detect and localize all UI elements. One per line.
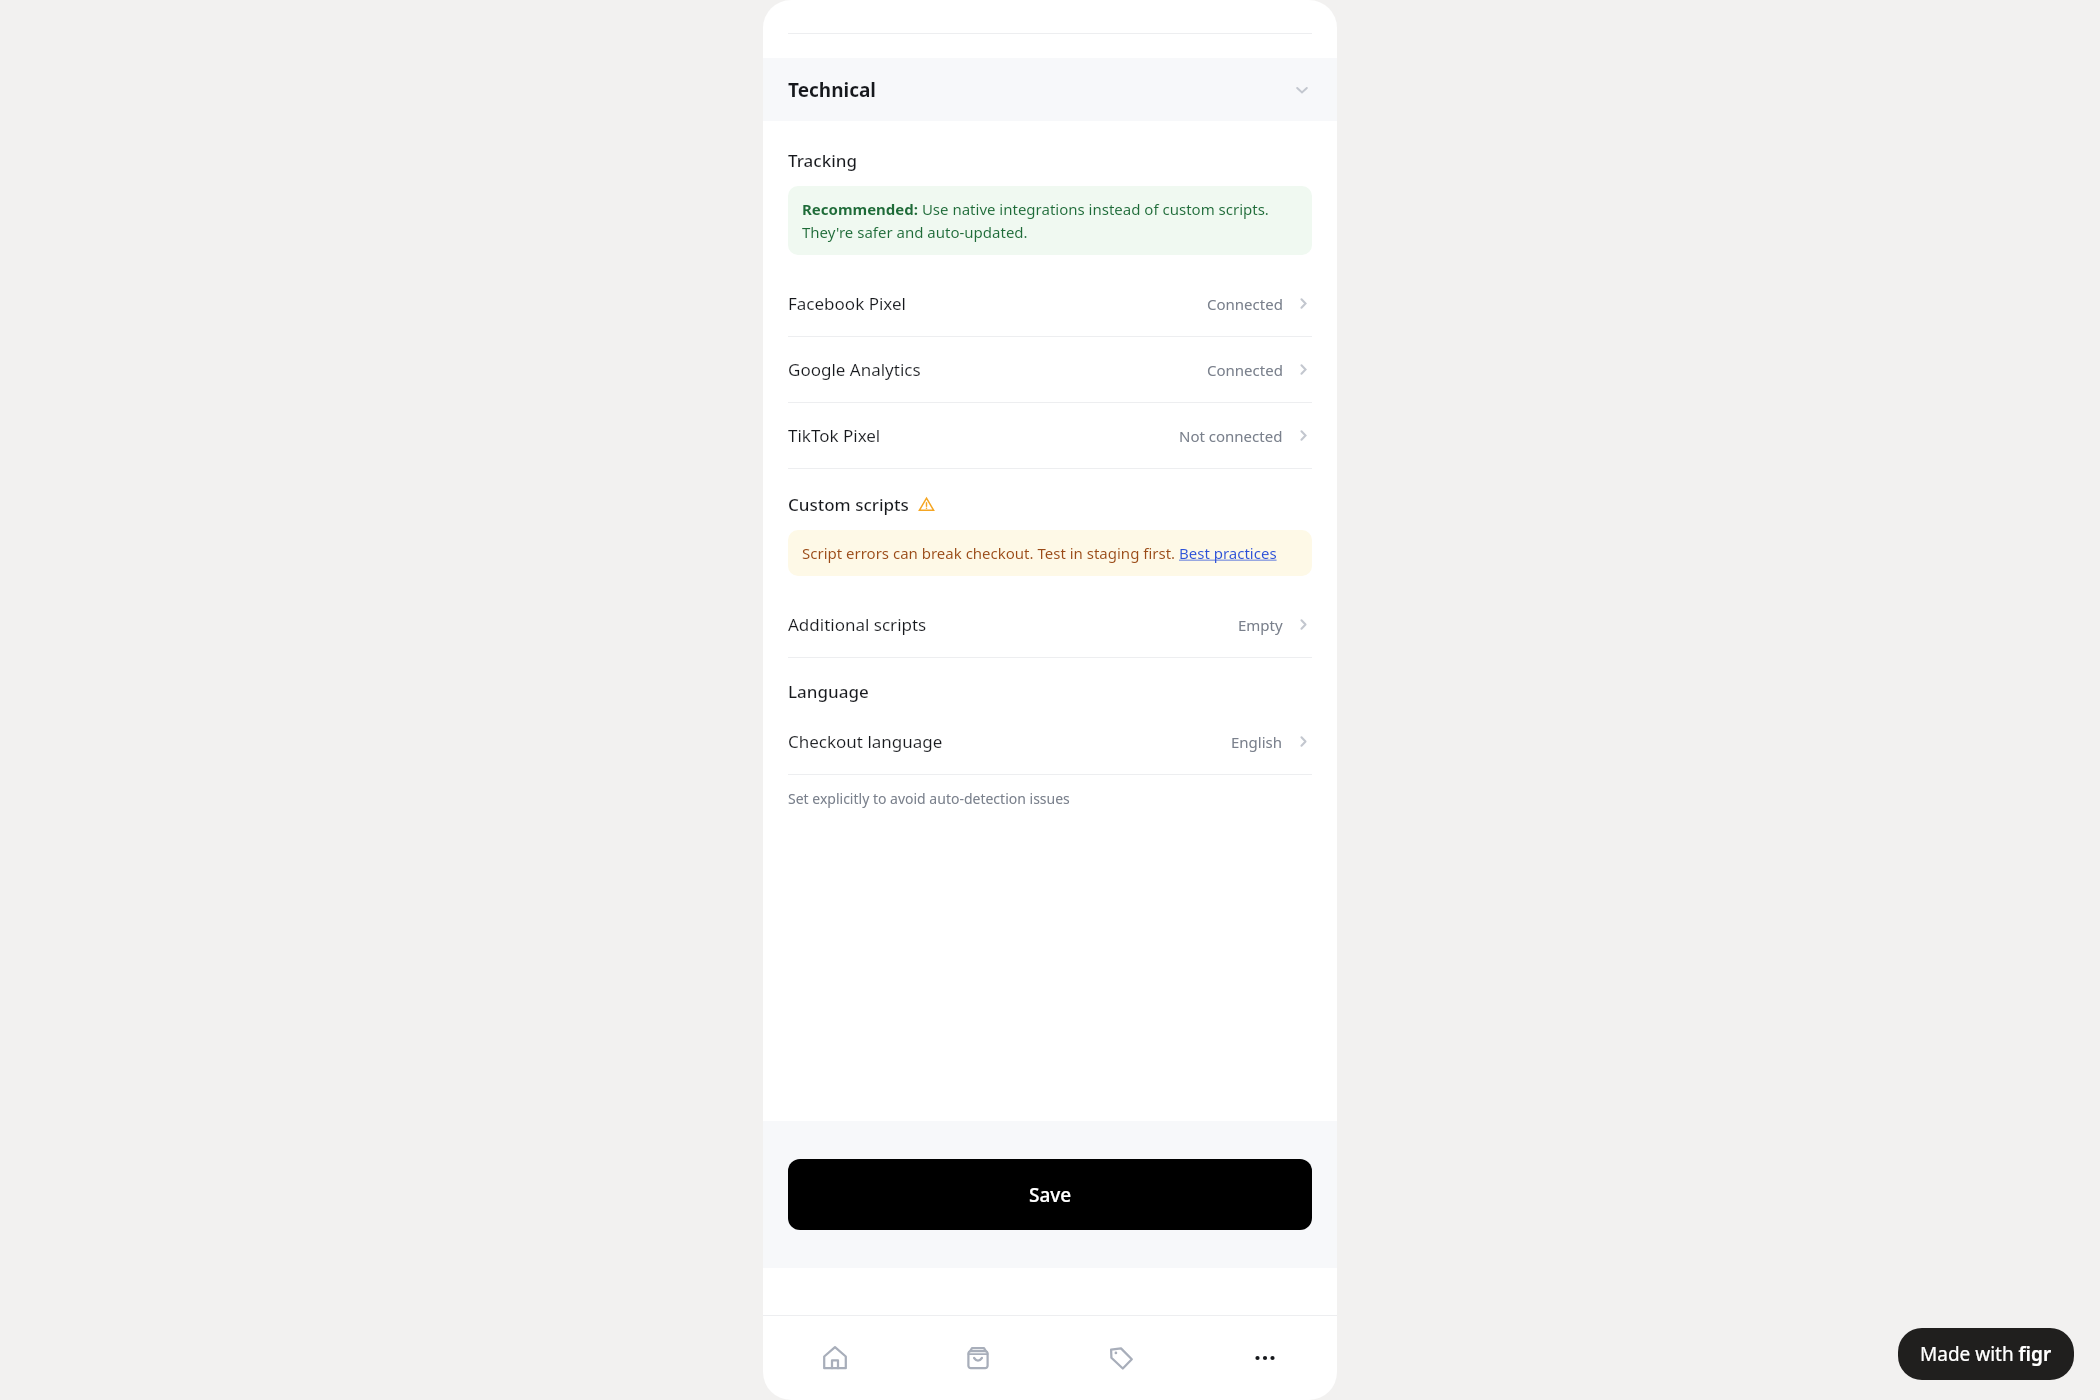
button[interactable]: More: [1193, 1316, 1337, 1400]
button[interactable]: Technical: [763, 58, 1337, 121]
staticText: Set explicitly to avoid auto-detection i…: [788, 789, 1070, 808]
staticText: Technical: [788, 77, 877, 103]
staticText: Tracking: [788, 149, 857, 172]
staticText: TikTok Pixel: [788, 424, 881, 447]
button[interactable]: Facebook Pixel: [763, 271, 1337, 336]
staticText: Script errors can break checkout. Test i…: [802, 543, 1277, 563]
staticText: Save: [1029, 1182, 1072, 1208]
staticText: Recommended: Use native integrations ins…: [802, 199, 1298, 242]
staticText: Connected: [1207, 294, 1283, 314]
staticText: Checkout language: [788, 730, 943, 753]
staticText: Additional scripts: [788, 613, 927, 636]
button[interactable]: Orders: [906, 1316, 1049, 1400]
button[interactable]: Made with figr: [1898, 1328, 2074, 1380]
staticText: Custom scripts: [788, 493, 909, 516]
staticText: Not connected: [1179, 426, 1283, 446]
staticText: Made with figr: [1920, 1341, 2052, 1367]
staticText: English: [1231, 732, 1283, 752]
button[interactable]: Google Analytics: [763, 337, 1337, 402]
button[interactable]: Save: [788, 1159, 1312, 1230]
staticText: Google Analytics: [788, 358, 921, 381]
button[interactable]: Home: [763, 1316, 906, 1400]
staticText: Empty: [1238, 615, 1283, 635]
button[interactable]: TikTok Pixel: [763, 403, 1337, 468]
staticText: Language: [788, 680, 869, 703]
button[interactable]: Additional scripts: [763, 592, 1337, 657]
staticText: Connected: [1207, 360, 1283, 380]
button[interactable]: Products: [1049, 1316, 1193, 1400]
staticText: Facebook Pixel: [788, 292, 906, 315]
button[interactable]: Checkout language: [763, 709, 1337, 774]
